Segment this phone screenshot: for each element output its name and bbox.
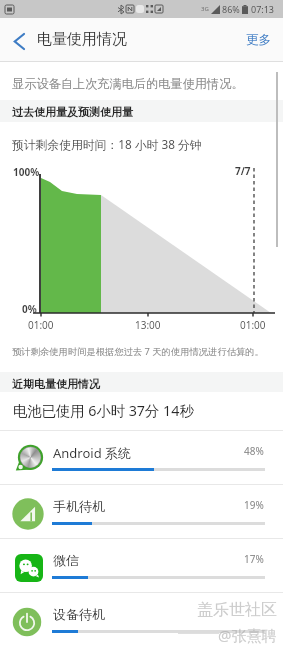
button[interactable]: 微信	[0, 538, 283, 592]
staticText: 更多	[246, 32, 271, 48]
staticText: 电量使用情况	[37, 30, 127, 49]
staticText: 13:00	[135, 318, 161, 332]
staticText: 3G	[201, 5, 209, 13]
staticText: 100%	[13, 165, 40, 179]
button[interactable]: 设备待机	[0, 592, 283, 646]
button[interactable]: 更多	[234, 22, 283, 58]
staticText: 预计剩余使用时间是根据您过去 7 天的使用情况进行估算的。	[12, 345, 264, 358]
staticText: 显示设备自上次充满电后的电量使用情况。	[12, 76, 244, 91]
staticText: Android 系统	[53, 444, 132, 462]
button[interactable]: Back	[4, 26, 34, 56]
staticText: 07:13	[251, 3, 275, 15]
staticText: 电池已使用 6小时 37分 14秒	[13, 401, 194, 421]
button[interactable]: 手机待机	[0, 484, 283, 538]
button[interactable]: Android 系统	[0, 430, 283, 484]
staticText: 0%	[22, 302, 37, 316]
staticText: 86%	[222, 3, 240, 15]
staticText: 01:00	[240, 318, 266, 332]
staticText: @张熹聘	[218, 625, 277, 645]
staticText: 7/7	[235, 164, 251, 178]
staticText: 48%	[244, 444, 264, 458]
staticText: 19%	[244, 498, 264, 512]
staticText: 17%	[244, 552, 264, 566]
staticText: 盖乐世社区	[197, 600, 277, 620]
staticText: 设备待机	[53, 606, 105, 622]
staticText: 预计剩余使用时间：18 小时 38 分钟	[12, 136, 202, 152]
staticText: 01:00	[28, 318, 54, 332]
staticText: 过去使用量及预测使用量	[12, 105, 133, 119]
staticText: 手机待机	[53, 498, 105, 514]
staticText: 微信	[53, 552, 79, 568]
staticText: 近期电量使用情况	[12, 377, 100, 391]
